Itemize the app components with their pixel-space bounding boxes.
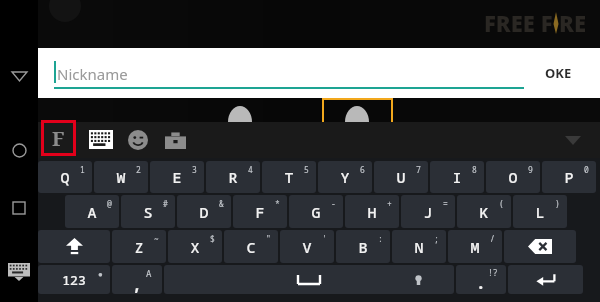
staticText: F (52, 125, 65, 152)
staticText: J (423, 202, 433, 222)
staticText: RE (559, 8, 586, 38)
staticText: U (396, 167, 406, 187)
staticText: FREE F (484, 8, 553, 38)
staticText: 6 (360, 164, 365, 175)
button[interactable]: OKE (539, 58, 578, 88)
button[interactable]: Recents (9, 198, 29, 218)
staticText: ; (434, 233, 439, 244)
staticText: A (146, 267, 152, 279)
button[interactable]: Emoji (128, 130, 148, 150)
button[interactable]: X (168, 230, 222, 263)
staticText: Y (340, 167, 350, 187)
staticText: N (414, 237, 424, 257)
staticText: S (143, 202, 153, 222)
staticText: ~ (154, 233, 159, 244)
staticText: W (116, 167, 126, 187)
staticText: ● (98, 268, 103, 279)
staticText: 123 (62, 271, 86, 289)
staticText: 8 (472, 164, 477, 175)
staticText: ) (555, 198, 560, 209)
button[interactable]: D (177, 195, 231, 228)
staticText: 0 (584, 164, 589, 175)
button[interactable]: J (401, 195, 455, 228)
staticText: D (199, 202, 209, 222)
button[interactable] (504, 230, 576, 263)
button[interactable]: S (121, 195, 175, 228)
staticText: * (275, 198, 280, 209)
staticText: A (87, 202, 97, 222)
staticText: " (266, 233, 271, 244)
staticText: P (564, 167, 574, 187)
button[interactable]: M (448, 230, 502, 263)
staticText: 3 (192, 164, 197, 175)
staticText: : (378, 233, 383, 244)
button[interactable]: C (224, 230, 278, 263)
staticText: M (470, 237, 480, 257)
button[interactable]: Home (9, 140, 29, 160)
button[interactable]: U (374, 161, 428, 193)
staticText: + (387, 198, 392, 209)
staticText: # (163, 198, 168, 209)
button[interactable]: F (233, 195, 287, 228)
button[interactable]: A (65, 195, 119, 228)
staticText: 1 (80, 164, 85, 175)
button[interactable]: E (150, 161, 204, 193)
staticText: = (443, 198, 448, 209)
staticText: F (255, 202, 265, 222)
staticText: , (132, 273, 142, 294)
staticText: 2 (136, 164, 141, 175)
button[interactable]: Switch keyboard (8, 263, 30, 281)
staticText: T (284, 167, 294, 187)
staticText: G (311, 202, 321, 222)
button[interactable]: W (94, 161, 148, 193)
staticText: Z (134, 237, 144, 257)
button[interactable]: Y (318, 161, 372, 193)
button[interactable]: Hide keyboard (560, 127, 586, 153)
staticText: . (476, 272, 486, 294)
button[interactable] (38, 230, 110, 263)
button[interactable]: B (336, 230, 390, 263)
button[interactable]: H (345, 195, 399, 228)
button[interactable]: R (206, 161, 260, 193)
staticText: L (535, 202, 545, 222)
staticText: Q (60, 167, 70, 187)
button[interactable] (164, 265, 454, 294)
staticText: 9 (528, 164, 533, 175)
button[interactable]: Q (38, 161, 92, 193)
button[interactable]: Z (112, 230, 166, 263)
button[interactable]: 123 (38, 265, 110, 294)
button[interactable]: . (456, 265, 506, 294)
button[interactable]: Font (41, 120, 76, 156)
button[interactable]: G (289, 195, 343, 228)
button[interactable]: Keyboard (89, 130, 113, 149)
button[interactable]: N (392, 230, 446, 263)
staticText: & (219, 198, 224, 209)
button[interactable]: P (542, 161, 596, 193)
button[interactable]: Back (9, 66, 29, 86)
button[interactable]: I (430, 161, 484, 193)
staticText: 5 (304, 164, 309, 175)
button[interactable]: L (513, 195, 567, 228)
staticText: V (302, 237, 312, 257)
staticText: OKE (545, 64, 572, 82)
button[interactable]: , (112, 265, 162, 294)
staticText: R (228, 167, 238, 187)
staticText: E (172, 167, 182, 187)
staticText: B (358, 237, 368, 257)
staticText: O (508, 167, 518, 187)
button[interactable]: K (457, 195, 511, 228)
staticText: 7 (416, 164, 421, 175)
staticText: $ (210, 233, 215, 244)
button[interactable]: V (280, 230, 334, 263)
staticText: !? (488, 267, 498, 278)
staticText: Nickname (57, 64, 128, 84)
button[interactable]: T (262, 161, 316, 193)
button[interactable]: Stickers (165, 131, 186, 149)
staticText: @ (107, 198, 112, 209)
staticText: H (367, 202, 377, 222)
button[interactable]: O (486, 161, 540, 193)
staticText: 4 (248, 164, 253, 175)
staticText: - (331, 198, 336, 209)
button[interactable] (508, 265, 583, 294)
staticText: C (246, 237, 256, 257)
